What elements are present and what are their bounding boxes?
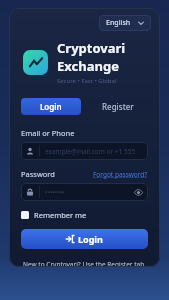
staticText: •••••••• [45,188,65,197]
button[interactable]: English [99,15,151,31]
staticText: Secure • Fast • Global [57,77,117,85]
staticText: Forgot password? [93,170,148,179]
button[interactable]: Login [21,98,81,115]
staticText: Register [102,101,134,112]
button[interactable]: Login [21,229,148,249]
staticText: Remember me [34,210,87,220]
button[interactable]: Forgot password? [93,170,148,179]
staticText: Email or Phone [21,128,75,138]
button[interactable]: Email or Phone [21,142,148,160]
staticText: New to Cryptovari? Use the Register tab. [18,260,151,267]
staticText: example@mail.com or +1 555 [45,147,136,156]
staticText: Login [78,233,103,245]
button[interactable]: Register [88,98,148,115]
button[interactable]: Remember me [21,210,87,220]
staticText: Exchange [57,57,119,75]
button[interactable]: Password [21,183,148,201]
button[interactable]: Show password [133,187,143,197]
staticText: Password [21,169,55,179]
staticText: Cryptovari [57,39,126,57]
staticText: Login [40,101,62,112]
staticText: English [106,18,131,28]
